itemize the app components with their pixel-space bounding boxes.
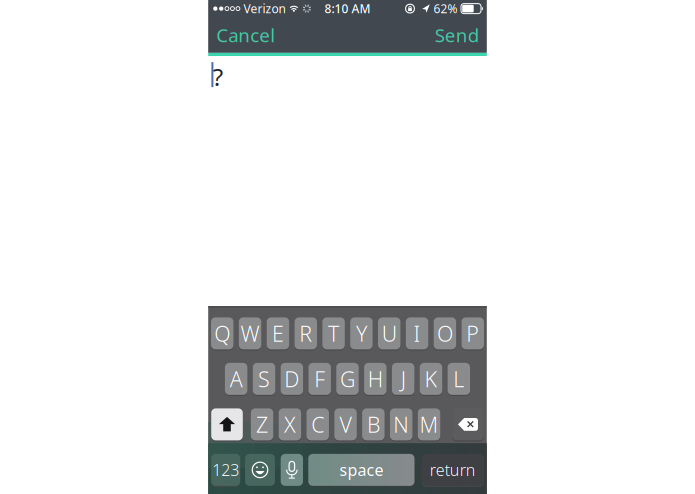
button[interactable]: M [418,408,440,441]
staticText: T [328,319,339,347]
button[interactable]: F [308,362,331,395]
staticText: Send [435,23,479,47]
button[interactable]: R [294,317,317,350]
staticText: return [430,459,476,480]
staticText: Z [256,410,268,438]
staticText: 62% [433,1,457,16]
button[interactable]: A [225,362,247,395]
staticText: Q [214,319,230,347]
staticText: I [414,319,421,347]
staticText: O [437,319,453,347]
staticText: P [466,319,479,347]
staticText: Verizon [243,1,285,16]
staticText: W [241,319,260,347]
button[interactable]: L [448,362,470,395]
staticText: M [419,410,438,438]
button[interactable]: K [420,362,442,395]
button[interactable]: G [336,362,359,395]
staticText: C [311,410,324,438]
button[interactable]: D [281,362,303,395]
button[interactable]: Send [435,23,479,47]
staticText: U [382,319,397,347]
button[interactable]: Y [350,317,373,350]
staticText: 123 [212,459,239,480]
button[interactable]: X [279,408,301,441]
staticText: L [453,365,464,393]
staticText: N [393,410,409,438]
button[interactable]: E [267,317,289,350]
staticText: S [258,365,270,393]
staticText: V [340,410,352,438]
button[interactable]: I [406,317,428,350]
button[interactable]: U [378,317,400,350]
staticText: B [367,410,380,438]
button[interactable]: H [364,362,387,395]
button[interactable]: Delete [452,408,484,441]
button[interactable]: T [322,317,345,350]
button[interactable]: Emoji [245,453,275,486]
staticText: D [284,365,299,393]
staticText: space [339,459,383,480]
button[interactable]: Dictate [281,453,303,486]
button[interactable]: Shift [211,408,243,441]
staticText: E [272,319,284,347]
staticText: Y [356,319,367,347]
button[interactable]: O [434,317,456,350]
button[interactable]: P [461,317,484,350]
staticText: X [284,410,296,438]
staticText: G [340,365,355,393]
staticText: R [299,319,312,347]
button[interactable]: V [334,408,357,441]
staticText: A [230,365,243,393]
button[interactable]: B [362,408,385,441]
button[interactable]: J [392,362,414,395]
button[interactable]: Z [251,408,273,441]
button[interactable]: Q [211,317,233,350]
staticText: J [401,365,406,393]
staticText: H [368,365,383,393]
button[interactable]: W [239,317,261,350]
button[interactable]: 123 [211,453,240,486]
button[interactable]: Cancel [216,23,275,47]
button[interactable]: space [308,453,414,486]
staticText: K [424,365,437,393]
button[interactable]: return [422,453,484,486]
staticText: Cancel [216,23,275,47]
button[interactable]: C [306,408,329,441]
staticText: ? [213,61,223,92]
button[interactable]: N [390,408,412,441]
staticText: 8:10 AM [324,1,370,16]
button[interactable]: S [253,362,275,395]
staticText: F [314,365,325,393]
